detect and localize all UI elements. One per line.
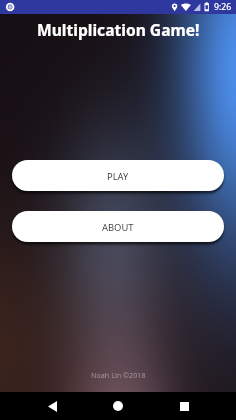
- button[interactable]: Recents: [170, 392, 198, 420]
- staticText: ABOUT: [102, 221, 134, 234]
- button[interactable]: PLAY: [12, 160, 224, 191]
- staticText: Multiplication Game!: [37, 19, 200, 40]
- staticText: PLAY: [107, 170, 129, 183]
- button[interactable]: ABOUT: [12, 211, 224, 242]
- button[interactable]: Back: [38, 392, 66, 420]
- button[interactable]: Home: [104, 392, 132, 420]
- staticText: Noah Lin ©2018: [91, 370, 146, 380]
- staticText: 9:26: [214, 1, 232, 13]
